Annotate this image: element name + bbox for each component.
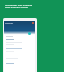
button[interactable]: Add: [28, 32, 31, 35]
staticText: Security: [5, 22, 14, 25]
staticText: Customize and manage your account access: [5, 3, 33, 9]
